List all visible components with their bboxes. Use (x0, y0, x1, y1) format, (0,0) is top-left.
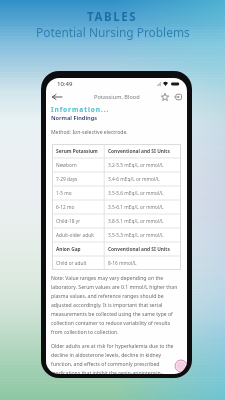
staticText: 3.5-6.1 mEq/L or mmol/L (108, 204, 164, 211)
staticText: 3.2-5.5 mEq/L or mmol/L (108, 162, 164, 169)
staticText: Potential Nursing Problems (36, 24, 190, 40)
staticText: 1-5 mo (56, 190, 72, 197)
staticText: Information... (51, 105, 110, 114)
staticText: 6-12 mo (56, 204, 75, 211)
staticText: 3.8-5.1 mEq/L or mmol/L (108, 218, 164, 225)
staticText: Note: Value ranges may vary depending on… (51, 275, 182, 336)
staticText: Older adults are at risk for hyperkalemi… (51, 343, 182, 374)
staticText: 7-29 days (56, 176, 78, 183)
staticText: 3.4-6 mEq/L or mmol/L (108, 176, 160, 183)
staticText: Serum Potassium (56, 148, 98, 155)
staticText: 8-16 mmol/L (108, 260, 137, 267)
staticText: Anion Gap (56, 246, 81, 253)
button[interactable]: Back (50, 90, 63, 103)
staticText: Child or adult (56, 260, 87, 267)
staticText: Newborn (56, 162, 77, 169)
staticText: TABLES (87, 9, 138, 25)
staticText: Normal Findings (51, 114, 98, 122)
staticText: Potassium, Blood (94, 93, 140, 101)
staticText: Conventional and SI Units (108, 148, 170, 155)
staticText: 10:49 (57, 80, 73, 88)
staticText: Method: Ion-selective electrode. (51, 129, 128, 136)
staticText: Conventional and SI Units (108, 246, 170, 253)
staticText: 3.5-5.6 mEq/L or mmol/L (108, 190, 164, 197)
button[interactable]: Add to queue (171, 90, 184, 103)
button[interactable]: Add (175, 360, 187, 372)
button[interactable]: Favorite (158, 90, 171, 103)
staticText: Child-18 yr (56, 218, 81, 225)
staticText: Adult-older adult (56, 232, 95, 239)
staticText: 3.5-5.3 mEq/L or mmol/L (108, 232, 164, 239)
